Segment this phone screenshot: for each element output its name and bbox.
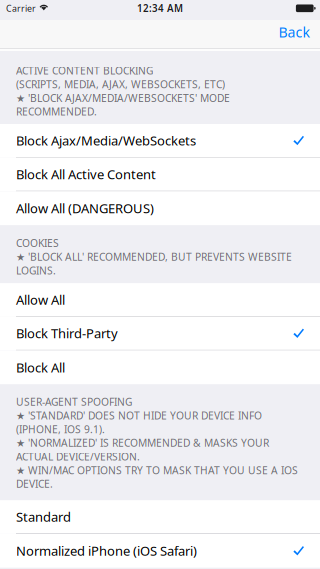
staticText: Allow All (DANGEROUS)	[16, 199, 154, 217]
staticText: ACTIVE CONTENT BLOCKING (SCRIPTS, MEDIA,…	[16, 64, 230, 119]
staticText: Carrier	[6, 2, 36, 14]
staticText: Block All Active Content	[16, 165, 156, 183]
button[interactable]: Normalized iPhone (iOS Safari)	[0, 534, 320, 568]
button[interactable]: Allow All	[0, 283, 320, 317]
staticText: COOKIES ★ 'BLOCK ALL' RECOMMENDED, BUT P…	[16, 236, 292, 277]
staticText: Block Ajax/Media/WebSockets	[16, 132, 196, 149]
staticText: Standard	[16, 508, 71, 525]
button[interactable]: Standard	[0, 500, 320, 534]
button[interactable]: Back	[278, 19, 320, 48]
button[interactable]: Block Ajax/Media/WebSockets	[0, 124, 320, 158]
staticText: Normalized iPhone (iOS Safari)	[16, 542, 197, 560]
staticText: USER-AGENT SPOOFING ★ 'STANDARD' DOES NO…	[16, 395, 298, 491]
staticText: Allow All	[16, 291, 65, 308]
button[interactable]: Block Third-Party	[0, 317, 320, 350]
button[interactable]: Allow All (DANGEROUS)	[0, 191, 320, 225]
staticText: Back	[278, 22, 310, 42]
button[interactable]: Block All	[0, 350, 320, 384]
staticText: Block All	[16, 358, 65, 376]
staticText: Block Third-Party	[16, 324, 118, 342]
button[interactable]: Block All Active Content	[0, 158, 320, 191]
staticText: 12:34 AM	[137, 2, 183, 15]
